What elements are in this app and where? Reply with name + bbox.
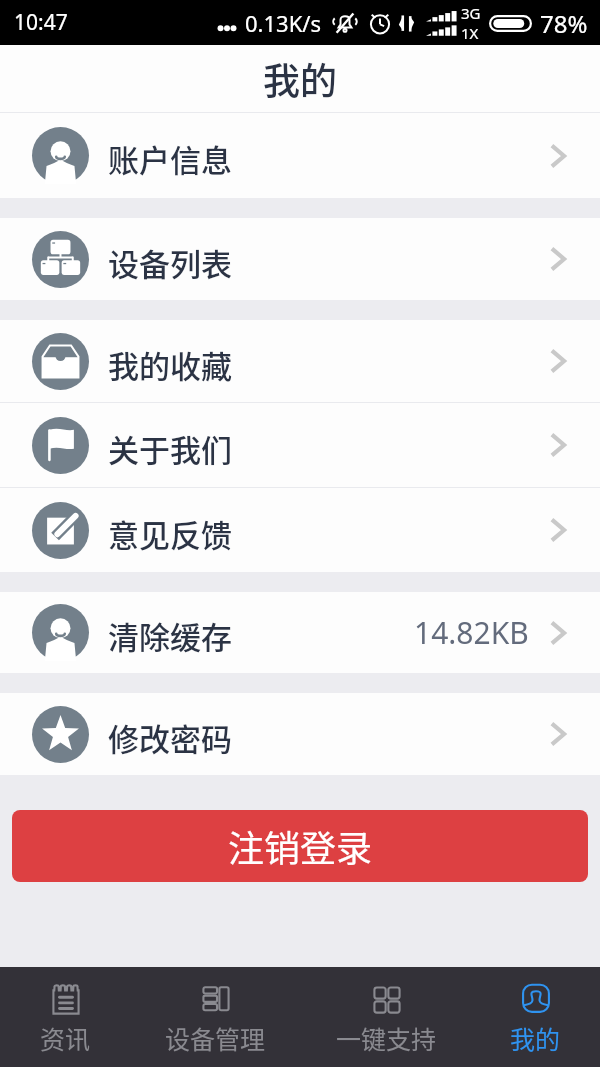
staticText: 3G bbox=[461, 3, 481, 23]
button[interactable]: 注销登录 bbox=[12, 810, 588, 882]
button[interactable]: 意见反馈 bbox=[0, 488, 600, 572]
button[interactable]: 关于我们 bbox=[0, 403, 600, 487]
staticText: 账户信息 bbox=[108, 136, 232, 181]
staticText: 清除缓存 bbox=[108, 613, 232, 658]
button[interactable]: 设备管理 bbox=[150, 967, 300, 1067]
button[interactable]: 资讯 bbox=[0, 967, 150, 1067]
button[interactable]: 清除缓存 bbox=[0, 592, 600, 673]
button[interactable]: 设备列表 bbox=[0, 218, 600, 300]
staticText: 注销登录 bbox=[228, 820, 373, 872]
staticText: 我的收藏 bbox=[108, 342, 232, 387]
button[interactable]: 我的 bbox=[450, 967, 600, 1067]
staticText: 78% bbox=[540, 7, 588, 40]
staticText: 10:47 bbox=[14, 8, 68, 37]
staticText: 我的 bbox=[510, 1020, 561, 1056]
staticText: 设备列表 bbox=[108, 240, 232, 285]
staticText: 我的 bbox=[263, 52, 337, 106]
staticText: 0.13K/s bbox=[245, 8, 321, 38]
staticText: 14.82KB bbox=[414, 612, 529, 653]
staticText: 资讯 bbox=[40, 1020, 91, 1056]
button[interactable]: 修改密码 bbox=[0, 693, 600, 775]
button[interactable]: 我的收藏 bbox=[0, 320, 600, 402]
staticText: 设备管理 bbox=[165, 1020, 266, 1056]
staticText: 关于我们 bbox=[108, 426, 232, 471]
staticText: 一键支持 bbox=[336, 1020, 437, 1056]
staticText: 修改密码 bbox=[108, 715, 232, 760]
staticText: 1X bbox=[461, 23, 479, 43]
staticText: 意见反馈 bbox=[108, 511, 232, 556]
button[interactable]: 一键支持 bbox=[300, 967, 450, 1067]
button[interactable]: 账户信息 bbox=[0, 113, 600, 198]
